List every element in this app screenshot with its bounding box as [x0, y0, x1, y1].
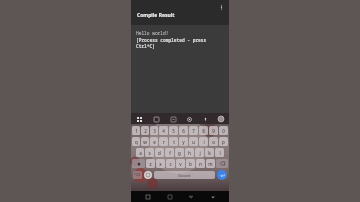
button[interactable]: x: [156, 159, 165, 168]
staticText: m: [208, 161, 213, 167]
staticText: v: [179, 161, 182, 167]
button[interactable]: e: [150, 137, 158, 146]
staticText: j: [199, 150, 201, 156]
staticText: 4: [162, 128, 165, 134]
button[interactable]: w: [141, 137, 149, 146]
staticText: 7: [192, 128, 195, 134]
button[interactable]: t: [169, 137, 178, 146]
staticText: p: [222, 139, 225, 145]
button[interactable]: k: [205, 148, 214, 157]
button[interactable]: m: [206, 159, 215, 168]
button[interactable]: 2: [141, 126, 149, 135]
staticText: 8: [202, 128, 205, 134]
button[interactable]: 8: [199, 126, 208, 135]
staticText: 2: [144, 128, 147, 134]
button[interactable]: j: [195, 148, 204, 157]
staticText: [Process completed - press Ctrl+C]: [136, 37, 225, 49]
button[interactable]: 7: [189, 126, 198, 135]
staticText: 5: [172, 128, 175, 134]
staticText: u: [192, 139, 195, 145]
button[interactable]: Hide keyboard: [208, 192, 217, 201]
staticText: i: [203, 139, 205, 145]
button[interactable]: p: [219, 137, 228, 146]
staticText: a: [139, 150, 142, 156]
button[interactable]: l: [215, 148, 224, 157]
button[interactable]: Emoji: [144, 171, 152, 179]
staticText: e: [153, 139, 156, 145]
button[interactable]: r: [159, 137, 168, 146]
staticText: 0: [222, 128, 225, 134]
staticText: d: [158, 150, 161, 156]
button[interactable]: Shift: [132, 159, 145, 168]
button[interactable]: 0: [219, 126, 228, 135]
button[interactable]: ?123: [133, 171, 142, 179]
staticText: ?123: [134, 173, 141, 177]
button[interactable]: Backspace: [216, 159, 228, 168]
staticText: 9: [212, 128, 215, 134]
staticText: w: [143, 139, 147, 145]
button[interactable]: Voice input: [201, 115, 209, 123]
staticText: t: [173, 139, 175, 145]
staticText: c: [169, 161, 172, 167]
staticText: q: [135, 139, 138, 145]
staticText: 3: [153, 128, 156, 134]
button[interactable]: Home: [165, 192, 174, 201]
button[interactable]: Enter: [217, 170, 227, 180]
button[interactable]: 5: [169, 126, 178, 135]
staticText: Hello world!: [136, 30, 169, 36]
button[interactable]: s: [145, 148, 154, 157]
button[interactable]: q: [132, 137, 140, 146]
button[interactable]: 6: [179, 126, 188, 135]
button[interactable]: d: [155, 148, 164, 157]
staticText: Gboard: [178, 173, 191, 178]
button[interactable]: Recent apps: [143, 192, 152, 201]
button[interactable]: f: [165, 148, 174, 157]
staticText: h: [188, 150, 191, 156]
staticText: b: [189, 161, 192, 167]
button[interactable]: 1: [132, 126, 140, 135]
button[interactable]: a: [136, 148, 144, 157]
staticText: n: [199, 161, 202, 167]
button[interactable]: Back: [186, 192, 195, 201]
staticText: Compile Result: [137, 12, 175, 19]
button[interactable]: Settings: [185, 115, 193, 123]
button[interactable]: g: [175, 148, 184, 157]
staticText: g: [178, 150, 181, 156]
button[interactable]: 3: [150, 126, 158, 135]
staticText: z: [149, 161, 152, 167]
button[interactable]: z: [146, 159, 155, 168]
button[interactable]: c: [166, 159, 175, 168]
button[interactable]: More options: [217, 3, 225, 11]
button[interactable]: y: [179, 137, 188, 146]
button[interactable]: Theme: [217, 115, 225, 123]
button[interactable]: u: [189, 137, 198, 146]
staticText: 1: [135, 128, 138, 134]
staticText: s: [148, 150, 151, 156]
button[interactable]: Keyboard menu: [135, 115, 143, 123]
staticText: l: [219, 150, 221, 156]
button[interactable]: GIF: [169, 115, 177, 123]
button[interactable]: 4: [159, 126, 168, 135]
staticText: y: [182, 139, 185, 145]
staticText: r: [163, 139, 165, 145]
button[interactable]: n: [196, 159, 205, 168]
staticText: k: [208, 150, 211, 156]
button[interactable]: Space: [154, 171, 215, 179]
staticText: 6: [182, 128, 185, 134]
staticText: x: [159, 161, 162, 167]
button[interactable]: o: [209, 137, 218, 146]
staticText: o: [212, 139, 215, 145]
button[interactable]: v: [176, 159, 185, 168]
button[interactable]: Stickers: [152, 115, 160, 123]
button[interactable]: 9: [209, 126, 218, 135]
staticText: f: [169, 150, 171, 156]
button[interactable]: i: [199, 137, 208, 146]
button[interactable]: h: [185, 148, 194, 157]
button[interactable]: b: [186, 159, 195, 168]
